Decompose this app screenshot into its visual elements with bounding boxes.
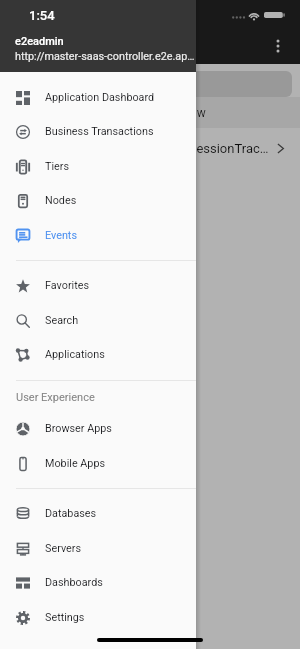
button[interactable]: Dashboards bbox=[0, 565, 196, 600]
button[interactable]: Business Transactions bbox=[0, 114, 196, 149]
button[interactable]: Favorites bbox=[0, 268, 196, 303]
button[interactable]: Tiers bbox=[0, 149, 196, 184]
staticText: Application Flow bbox=[117, 106, 206, 120]
staticText: Nodes bbox=[45, 194, 77, 207]
button[interactable]: More options bbox=[264, 32, 292, 60]
button[interactable]: Mobile Apps bbox=[0, 446, 196, 481]
staticText: Business Transactions bbox=[45, 125, 154, 138]
button[interactable]: Search bbox=[0, 303, 196, 338]
staticText: Favorites bbox=[45, 279, 90, 292]
button[interactable]: Events bbox=[0, 218, 196, 253]
button[interactable]: Browser Apps bbox=[0, 411, 196, 446]
staticText: Dashboards bbox=[45, 576, 103, 589]
button[interactable]: E2E-SessionTrac… bbox=[0, 128, 300, 169]
staticText: Settings bbox=[45, 611, 85, 624]
staticText: Applications bbox=[45, 348, 105, 361]
staticText: Mobile Apps bbox=[45, 457, 106, 470]
staticText: Tiers bbox=[45, 160, 70, 173]
staticText: Search bbox=[45, 314, 79, 327]
staticText: Events bbox=[45, 229, 77, 242]
button[interactable]: Servers bbox=[0, 531, 196, 566]
staticText: e2eadmin bbox=[15, 35, 64, 48]
staticText: http://master-saas-controller.e2e.ap… bbox=[15, 50, 195, 63]
button[interactable]: Application Dashboard bbox=[0, 80, 196, 115]
button[interactable]: Nodes bbox=[0, 183, 196, 218]
staticText: Databases bbox=[45, 507, 97, 520]
staticText: User Experience bbox=[16, 391, 95, 404]
staticText: Application Dashboard bbox=[45, 91, 155, 104]
staticText: Browser Apps bbox=[45, 422, 112, 435]
staticText: E2E-SessionTrac… bbox=[163, 141, 269, 156]
staticText: 1:54 bbox=[29, 8, 55, 23]
button[interactable]: Settings bbox=[0, 600, 196, 635]
button[interactable]: Applications bbox=[0, 337, 196, 372]
staticText: Servers bbox=[45, 542, 82, 555]
button[interactable]: Databases bbox=[0, 496, 196, 531]
